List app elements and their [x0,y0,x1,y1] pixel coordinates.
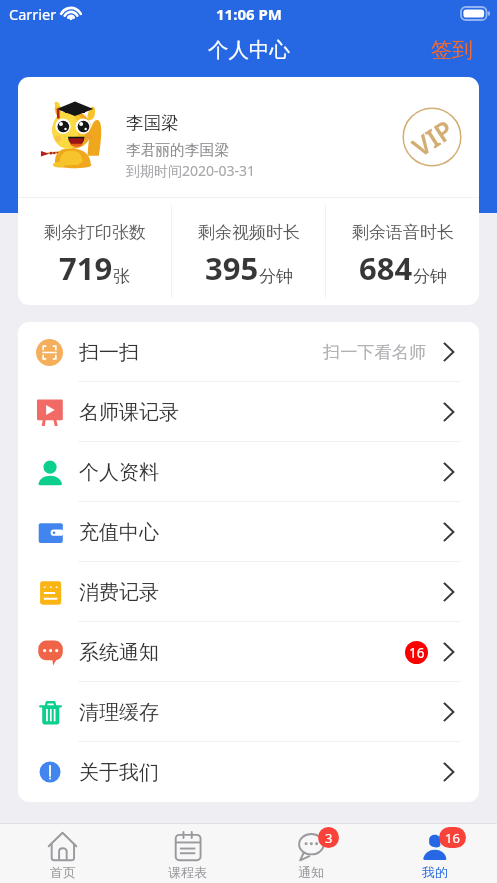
staticText: 个人中心 [208,37,290,63]
button[interactable]: 首页 [0,824,125,883]
staticText: 首页 [50,864,76,880]
staticText: 分钟 [259,266,293,287]
button[interactable]: 个人资料 [18,442,479,502]
button[interactable]: 扫一扫 [18,322,479,382]
staticText: 16 [445,829,460,847]
staticText: 剩余语音时长 [352,222,454,243]
staticText: 李国梁 [126,112,179,134]
staticText: 到期时间2020-03-31 [126,161,256,180]
staticText: 11:06 PM [216,4,282,24]
staticText: 清理缓存 [79,700,159,725]
staticText: 关于我们 [79,760,159,785]
button[interactable]: 名师课记录 [18,382,479,442]
staticText: 3 [325,829,333,847]
button[interactable]: 签到 [417,29,497,71]
staticText: 分钟 [413,266,447,287]
staticText: 签到 [431,37,473,63]
staticText: 719 [59,247,113,289]
staticText: 消费记录 [79,580,159,605]
staticText: 名师课记录 [79,400,179,425]
staticText: 李君丽的李国梁 [126,141,229,160]
staticText: 395 [205,247,259,289]
button[interactable]: 充值中心 [18,502,479,562]
staticText: 684 [359,247,413,289]
staticText: VIP [405,111,460,164]
staticText: 通知 [298,864,324,880]
staticText: 个人资料 [79,460,159,485]
staticText: 张 [113,266,130,287]
button[interactable]: 课程表 [125,824,249,883]
staticText: 充值中心 [79,520,159,545]
button[interactable]: 3 [249,824,373,883]
staticText: 扫一扫 [79,340,139,365]
staticText: 系统通知 [79,640,159,665]
button[interactable]: 16 [373,824,497,883]
staticText: 我的 [422,864,448,880]
staticText: 16 [409,644,425,662]
button[interactable]: 清理缓存 [18,682,479,742]
staticText: 剩余视频时长 [198,222,300,243]
staticText: 扫一下看名师 [323,341,427,363]
button[interactable]: 消费记录 [18,562,479,622]
button[interactable]: 系统通知 [18,622,479,682]
staticText: 剩余打印张数 [44,222,146,243]
staticText: 课程表 [168,864,207,880]
staticText: Carrier [9,4,57,24]
button[interactable]: 关于我们 [18,742,479,802]
